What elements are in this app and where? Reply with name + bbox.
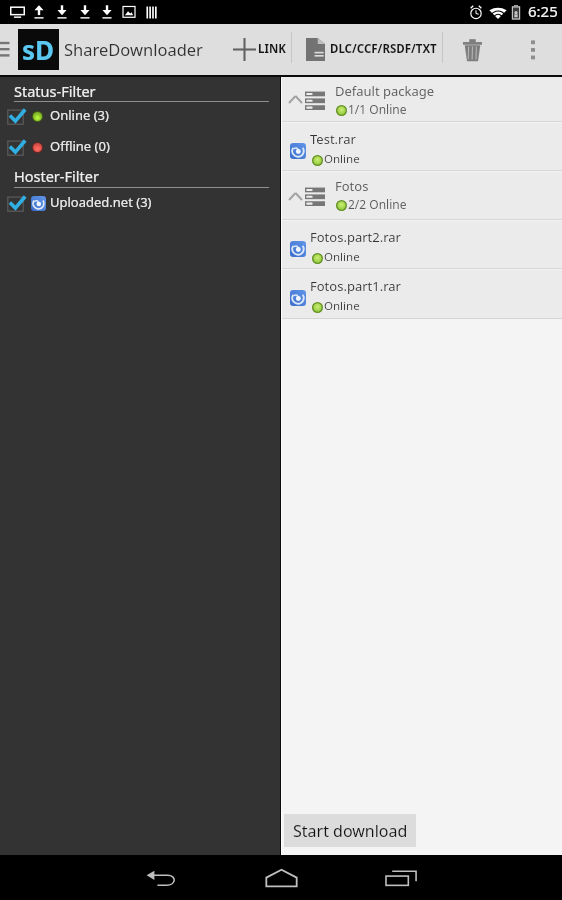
staticText: Online <box>324 249 360 265</box>
staticText: Fotos.part1.rar <box>310 277 401 295</box>
button[interactable]: Fotos.part1.rar <box>282 270 562 320</box>
staticText: LINK <box>258 41 286 57</box>
button[interactable]: Offline (0) <box>0 134 280 160</box>
staticText: Status-Filter <box>14 81 96 101</box>
button[interactable]: Delete <box>446 24 498 75</box>
button[interactable]: Collapse <box>282 172 562 221</box>
staticText: 2/2 Online <box>348 196 407 212</box>
button[interactable]: LINK <box>231 24 291 75</box>
staticText: Hoster-Filter <box>14 166 99 186</box>
staticText: Uploaded.net (3) <box>50 193 152 211</box>
other: Collapse <box>289 193 302 200</box>
staticText: sD <box>22 32 55 67</box>
button[interactable]: Home <box>236 855 326 900</box>
staticText: 1/1 Online <box>348 101 407 117</box>
staticText: Test.rar <box>310 130 356 148</box>
staticText: ShareDownloader <box>64 38 203 60</box>
button[interactable]: Back <box>116 855 206 900</box>
button[interactable]: Test.rar <box>282 123 562 172</box>
staticText: Online <box>324 298 360 314</box>
staticText: Start download <box>293 820 408 842</box>
staticText: Default package <box>335 82 435 100</box>
staticText: 6:25 <box>528 1 558 21</box>
staticText: Online <box>324 151 360 167</box>
staticText: DLC/CCF/RSDF/TXT <box>330 41 437 57</box>
staticText: Offline (0) <box>50 137 110 155</box>
button[interactable]: Start download <box>284 814 416 847</box>
button[interactable]: Recent apps <box>356 855 446 900</box>
staticText: Online (3) <box>50 106 109 124</box>
staticText: Fotos.part2.rar <box>310 228 401 246</box>
button[interactable]: Uploaded.net (3) <box>0 190 280 216</box>
button[interactable]: Navigation drawer <box>0 24 17 75</box>
other: Collapse <box>289 96 302 103</box>
button[interactable]: Online (3) <box>0 103 280 129</box>
button[interactable]: DLC/CCF/RSDF/TXT <box>298 24 442 75</box>
staticText: Fotos <box>335 177 369 195</box>
button[interactable]: Fotos.part2.rar <box>282 221 562 270</box>
button[interactable]: Collapse <box>282 77 562 123</box>
button[interactable]: More options <box>508 24 558 75</box>
